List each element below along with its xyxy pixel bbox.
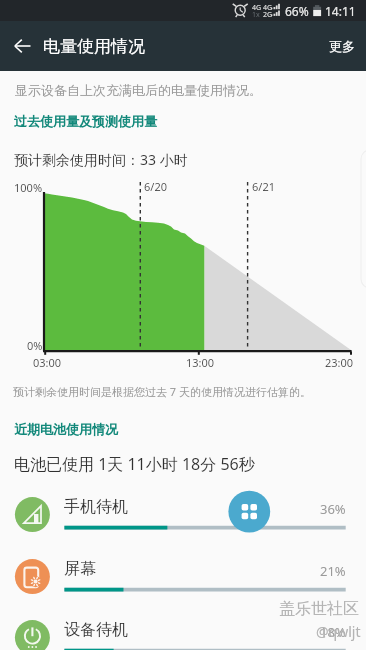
staticText: 36% <box>320 500 346 518</box>
staticText: 手机待机 <box>64 497 128 517</box>
staticText: 预计剩余使用时间：33 小时 <box>14 150 188 169</box>
staticText: 电池已使用 1天 11小时 18分 56秒 <box>14 453 255 475</box>
staticText: 更多 <box>329 38 355 54</box>
staticText: 1x <box>252 10 260 20</box>
button[interactable]: 屏幕 <box>0 545 366 606</box>
staticText: 2G <box>263 10 273 20</box>
staticText: @qwljt <box>316 622 361 641</box>
staticText: 4G <box>263 3 273 13</box>
staticText: 6/21 <box>252 179 275 194</box>
button[interactable]: 更多 <box>318 26 366 66</box>
staticText: 过去使用量及预测使用量 <box>14 113 157 129</box>
staticText: 盖乐世社区 <box>279 599 359 619</box>
staticText: 100% <box>14 180 43 195</box>
button[interactable]: 设备待机 <box>0 606 366 650</box>
staticText: 4G <box>252 3 262 13</box>
button[interactable]: Back <box>0 24 44 68</box>
staticText: 屏幕 <box>64 559 96 579</box>
staticText: 14:11 <box>325 3 356 19</box>
staticText: 03:00 <box>33 355 62 370</box>
staticText: 13:00 <box>186 355 215 370</box>
staticText: 21% <box>320 562 346 580</box>
staticText: 6/20 <box>144 179 167 194</box>
staticText: 0% <box>27 338 43 353</box>
staticText: 设备待机 <box>64 620 128 640</box>
staticText: 23:00 <box>325 355 354 370</box>
staticText: 显示设备自上次充满电后的电量使用情况。 <box>15 82 262 98</box>
staticText: 18% <box>320 623 346 641</box>
staticText: 预计剩余使用时间是根据您过去 7 天的使用情况进行估算的。 <box>13 384 312 399</box>
staticText: 近期电池使用情况 <box>14 421 118 437</box>
staticText: 电量使用情况 <box>43 36 145 57</box>
button[interactable]: 手机待机 <box>0 483 366 544</box>
staticText: 66% <box>285 3 309 19</box>
